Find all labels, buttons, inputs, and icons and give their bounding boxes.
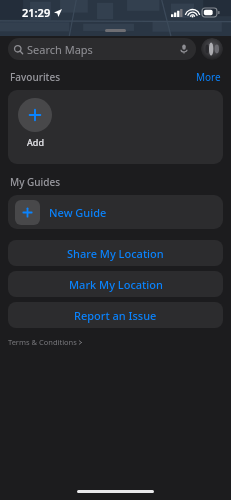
button[interactable]: New Guide [8, 195, 223, 229]
button[interactable]: Add [18, 98, 52, 148]
button[interactable]: Mark My Location [8, 271, 223, 297]
button[interactable]: Profile [201, 38, 223, 60]
staticText: Share My Location [67, 246, 164, 261]
staticText: Add [27, 136, 44, 148]
button[interactable]: Share My Location [8, 240, 223, 266]
button[interactable]: Terms & Conditions [8, 337, 83, 347]
button[interactable]: Report an Issue [8, 302, 223, 328]
button[interactable]: Search Maps [8, 38, 196, 60]
staticText: Terms & Conditions [8, 337, 77, 347]
staticText: New Guide [49, 205, 107, 220]
staticText: Report an Issue [74, 308, 157, 323]
staticText: More [196, 70, 221, 84]
staticText: Favourites [10, 70, 61, 84]
button[interactable]: Voice search [178, 43, 190, 55]
staticText: Search Maps [27, 42, 93, 57]
staticText: Mark My Location [69, 277, 163, 292]
button[interactable]: More [196, 70, 221, 84]
staticText: 21:29 [22, 5, 51, 20]
staticText: My Guides [10, 175, 61, 189]
